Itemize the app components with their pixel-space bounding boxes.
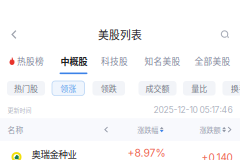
staticText: 涨跌幅 [137,124,158,135]
button[interactable]: 换手 [222,81,240,95]
button[interactable]: 中概股 [60,54,87,68]
button[interactable]: 知名美股 [144,55,180,67]
button[interactable]: 全部美股 [194,55,230,67]
button[interactable]: 热股榜 [9,55,44,67]
button[interactable]: Scroll columns right [226,124,232,136]
button[interactable]: 成交额 [138,81,176,95]
staticText: +0.140 [201,151,232,160]
staticText: 成交额 [145,82,169,94]
staticText: 领跌 [101,82,117,94]
button[interactable]: 领跌 [92,81,125,95]
staticText: 更新时间 [7,105,31,114]
button[interactable]: Search [213,20,237,48]
staticText: 2025-12-10 05:17:46 [153,105,232,115]
staticText: 名称 [7,124,23,135]
staticText: 热股榜 [17,55,44,67]
staticText: 科技股 [101,55,128,67]
button[interactable]: 涨跌幅 [137,124,164,135]
button[interactable]: 奥瑞金种业 [0,141,240,160]
button[interactable]: 涨跌额 [200,124,226,135]
button[interactable]: 量比 [183,81,215,95]
button[interactable]: Back [2,20,26,48]
staticText: 换手 [231,82,240,94]
staticText: 知名美股 [144,55,180,67]
staticText: 热门股 [14,82,38,94]
staticText: +8.97% [127,147,165,159]
staticText: 美股列表 [98,27,142,42]
button[interactable]: 热门股 [7,81,45,95]
button[interactable]: 科技股 [101,55,128,67]
button[interactable]: Scroll columns left [101,124,111,136]
staticText: 奥瑞金种业 [31,147,76,160]
staticText: 涨跌额 [200,124,221,135]
staticText: 中概股 [60,54,87,68]
staticText: 量比 [191,82,207,94]
staticText: 全部美股 [194,55,230,67]
staticText: 领涨 [60,82,76,94]
button[interactable]: 领涨 [52,81,84,95]
